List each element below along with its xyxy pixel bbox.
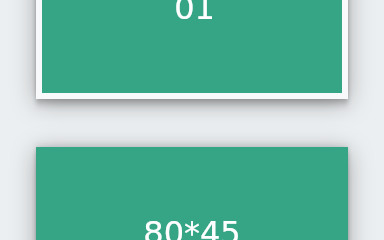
staticText: 01 [174,0,215,26]
button[interactable]: Measurement 01 [36,0,348,99]
button[interactable]: Measurement 80*45 [36,147,348,240]
staticText: 80*45 [143,214,241,240]
